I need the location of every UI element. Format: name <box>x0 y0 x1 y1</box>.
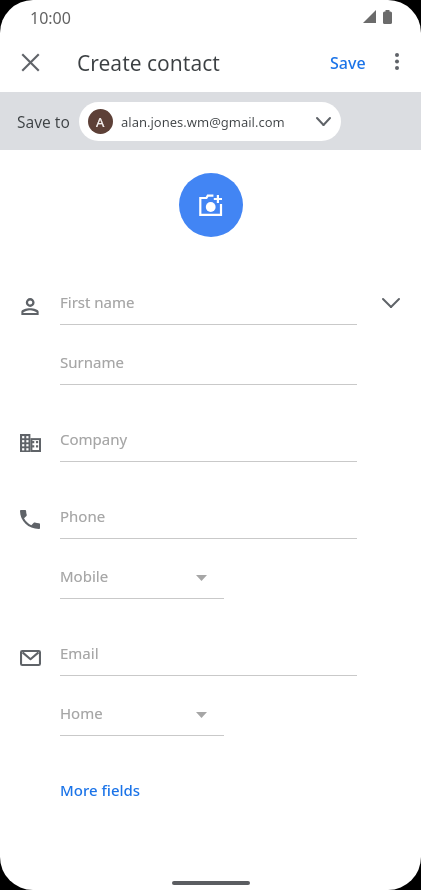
button[interactable]: First name <box>0 265 421 325</box>
staticText: Create contact <box>77 49 220 78</box>
button[interactable]: Email <box>0 616 421 676</box>
button[interactable]: Close <box>9 41 51 83</box>
staticText: Home <box>60 703 103 723</box>
button[interactable]: Mobile <box>0 539 421 599</box>
staticText: Phone <box>60 506 106 526</box>
staticText: First name <box>60 292 135 312</box>
button[interactable]: Home <box>0 676 421 736</box>
button[interactable]: More options <box>377 41 417 81</box>
staticText: Email <box>60 643 99 663</box>
button[interactable]: More fields <box>52 774 149 806</box>
button[interactable]: Surname <box>0 325 421 385</box>
button[interactable]: Phone <box>0 479 421 539</box>
staticText: Company <box>60 429 128 449</box>
button[interactable]: Add photo <box>179 173 243 237</box>
staticText: 10:00 <box>30 7 71 29</box>
button[interactable]: Company <box>0 402 421 462</box>
staticText: alan.jones.wm@gmail.com <box>121 113 285 131</box>
staticText: Save to <box>17 111 70 132</box>
button[interactable]: Expand name fields <box>374 286 408 320</box>
staticText: A <box>96 113 105 131</box>
button[interactable]: A <box>79 102 341 141</box>
staticText: Mobile <box>60 566 109 586</box>
button[interactable]: Save <box>322 41 374 85</box>
staticText: More fields <box>60 780 141 800</box>
staticText: Save <box>330 52 366 74</box>
staticText: Surname <box>60 352 124 372</box>
